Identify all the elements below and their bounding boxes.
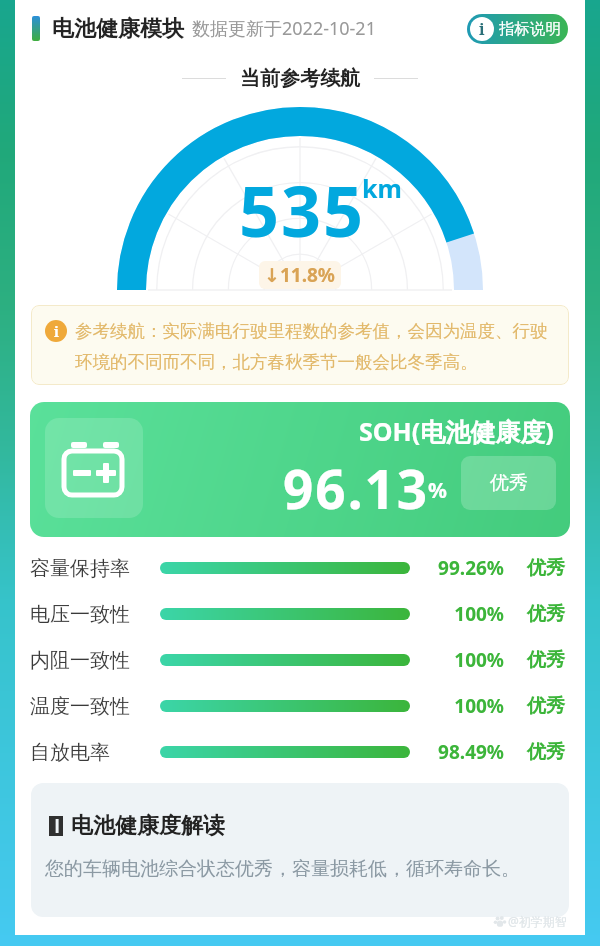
staticText: % (428, 476, 447, 505)
staticText: 内阻一致性 (30, 648, 160, 673)
staticText: ↓11.8% (264, 262, 336, 288)
button[interactable]: 自放电率 (0, 729, 600, 775)
staticText: 自放电率 (30, 740, 160, 765)
button[interactable]: i (467, 14, 568, 44)
staticText: @初学期智 (508, 913, 567, 929)
staticText: 100% (418, 647, 504, 673)
staticText: 容量保持率 (30, 556, 160, 581)
button[interactable]: 温度一致性 (0, 683, 600, 729)
staticText: 优秀 (527, 694, 565, 718)
staticText: 参考续航：实际满电行驶里程数的参考值，会因为温度、行驶 环境的不同而不同，北方春… (75, 320, 548, 373)
button[interactable]: 内阻一致性 (0, 637, 600, 683)
staticText: 100% (418, 693, 504, 719)
staticText: 指标说明 (499, 19, 561, 39)
staticText: 电池健康模块 (52, 15, 184, 43)
button[interactable]: 电压一致性 (0, 591, 600, 637)
button[interactable]: 优秀 (461, 456, 556, 510)
staticText: 优秀 (527, 648, 565, 672)
staticText: 100% (418, 601, 504, 627)
staticText: 电压一致性 (30, 602, 160, 627)
staticText: km (362, 171, 402, 205)
staticText: 优秀 (527, 740, 565, 764)
staticText: 优秀 (527, 602, 565, 626)
staticText: 温度一致性 (30, 694, 160, 719)
staticText: 96.13 (283, 452, 430, 524)
staticText: i (479, 18, 485, 40)
button[interactable]: 容量保持率 (0, 545, 600, 591)
staticText: 数据更新于2022-10-21 (192, 16, 376, 41)
staticText: 当前参考续航 (240, 66, 360, 91)
staticText: 优秀 (490, 471, 528, 495)
staticText: 电池健康度解读 (71, 812, 225, 840)
staticText: SOH(电池健康度) (359, 414, 554, 448)
staticText: 您的车辆电池综合状态优秀，容量损耗低，循环寿命长。 (45, 857, 520, 881)
staticText: 535 (239, 162, 366, 257)
staticText: 98.49% (418, 739, 504, 765)
staticText: 优秀 (527, 556, 565, 580)
staticText: i (54, 322, 59, 341)
staticText: 99.26% (418, 555, 504, 581)
